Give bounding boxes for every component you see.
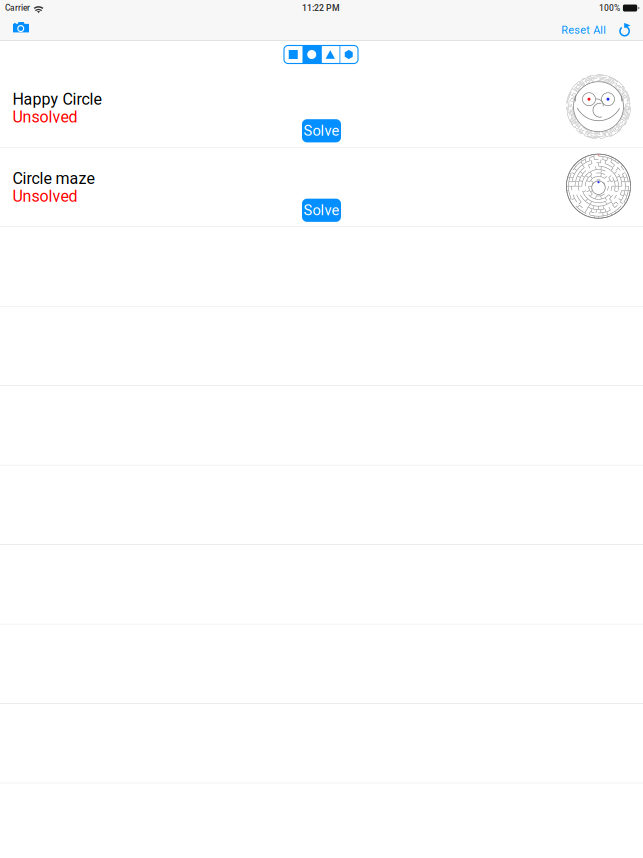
staticText: 11:22 PM	[302, 3, 340, 13]
staticText: 100%	[599, 3, 620, 13]
staticText: Unsolved	[13, 187, 78, 206]
button[interactable]: Solve	[302, 119, 341, 142]
button[interactable]: Solve	[302, 199, 341, 222]
staticText: Unsolved	[13, 108, 78, 126]
staticText: Circle maze	[13, 169, 95, 188]
button[interactable]: Camera	[0, 20, 42, 40]
staticText: Carrier	[5, 3, 30, 13]
staticText: Happy Circle	[13, 90, 102, 109]
button[interactable]: Shape filter	[284, 45, 358, 63]
button[interactable]: Circle maze	[0, 148, 643, 227]
staticText: Reset All	[561, 24, 606, 36]
button[interactable]: Refresh	[606, 21, 643, 39]
button[interactable]: Happy Circle	[0, 68, 643, 147]
button[interactable]: Reset All	[561, 20, 606, 40]
staticText: Solve	[303, 202, 339, 219]
staticText: Solve	[303, 122, 339, 139]
